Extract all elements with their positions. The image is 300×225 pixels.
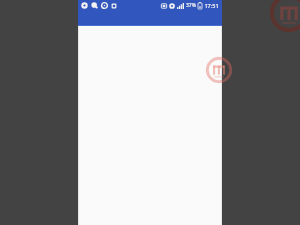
staticText: 17:51 (204, 2, 219, 9)
staticText: 37% (186, 2, 196, 9)
